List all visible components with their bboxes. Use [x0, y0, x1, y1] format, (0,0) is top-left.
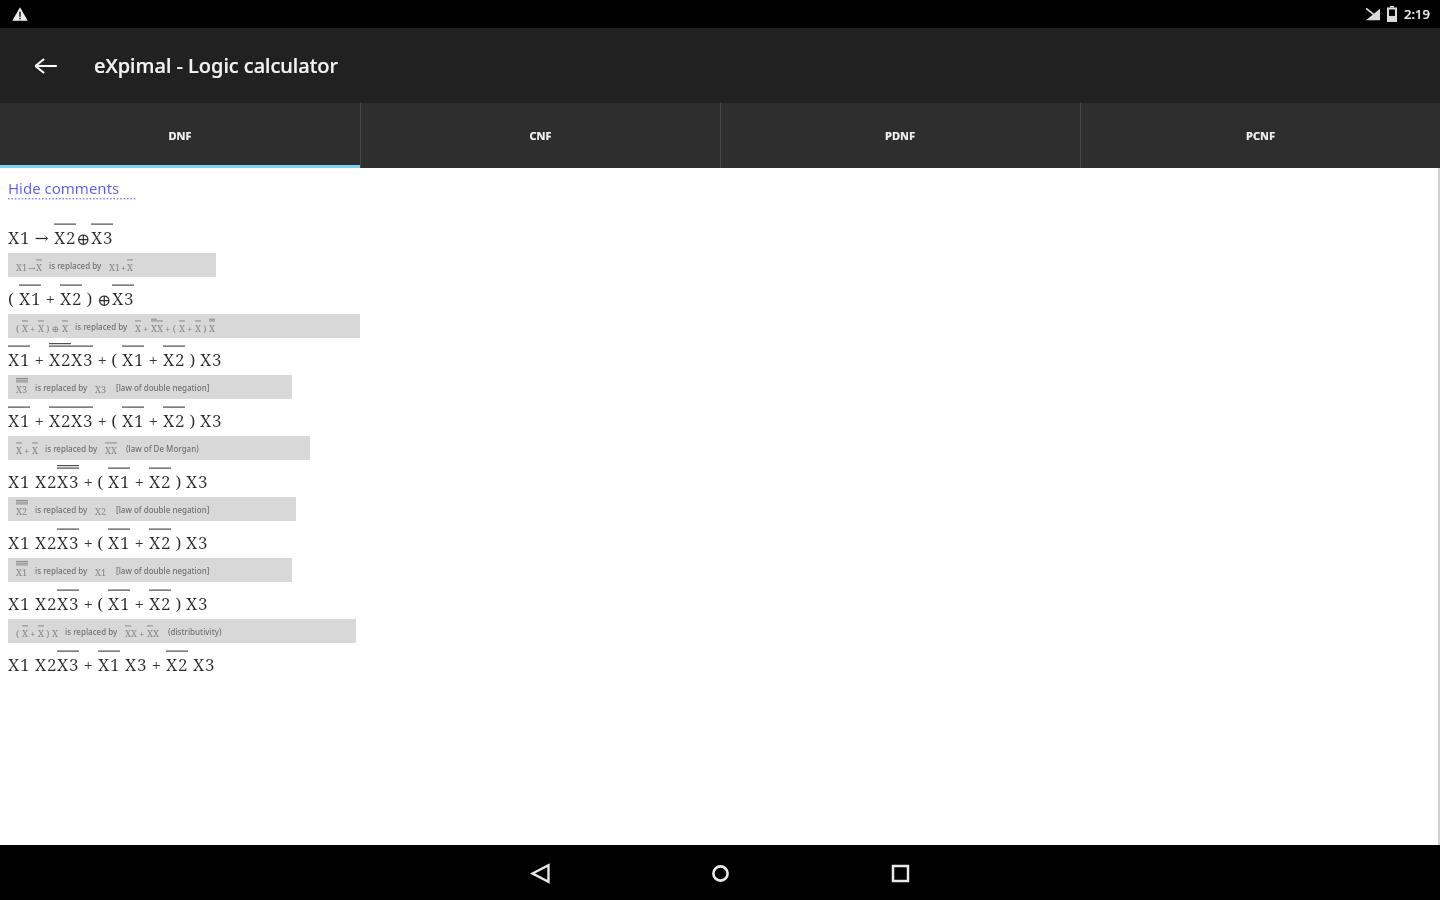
staticText: 3 [198, 592, 208, 615]
staticText: + [147, 653, 166, 676]
button[interactable]: ( [8, 619, 356, 643]
staticText: 3 [137, 653, 147, 676]
staticText: ( [8, 287, 19, 310]
staticText: X [200, 409, 212, 432]
staticText: X [71, 409, 83, 432]
staticText: + [144, 348, 163, 371]
staticText: X [112, 287, 124, 310]
staticText: X [8, 348, 20, 371]
staticText: X [54, 226, 66, 249]
staticText: 1 [134, 348, 144, 371]
staticText: + [22, 444, 32, 456]
staticText: DNF [168, 128, 192, 143]
button[interactable]: CNF [360, 103, 720, 168]
button[interactable]: X [8, 558, 292, 582]
staticText: 1 [20, 470, 30, 493]
staticText: is replaced by [35, 504, 88, 515]
staticText: + [137, 627, 147, 639]
button[interactable]: Home [693, 846, 747, 900]
staticText: X [122, 348, 134, 371]
staticText: 3 [69, 470, 79, 493]
staticText: 1 [20, 226, 30, 249]
staticText: X [186, 470, 198, 493]
staticText: 2 [101, 505, 107, 517]
button[interactable]: X [8, 497, 296, 521]
staticText: + [130, 592, 149, 615]
button[interactable]: ( [8, 314, 360, 338]
staticText: X [147, 627, 153, 639]
button[interactable]: Hide comments [8, 176, 135, 202]
staticText: Hide comments [8, 178, 120, 198]
staticText: X [108, 531, 120, 554]
staticText: + [28, 322, 38, 334]
button[interactable]: X [8, 375, 292, 399]
staticText: X [109, 261, 115, 273]
staticText: X [193, 653, 205, 676]
staticText: X [8, 531, 20, 554]
staticText: ) [185, 409, 200, 432]
button[interactable]: Recent apps [873, 846, 927, 900]
staticText: X [166, 653, 178, 676]
staticText: 1 [22, 566, 28, 578]
staticText: X [38, 322, 44, 334]
button[interactable]: Back [513, 846, 567, 900]
staticText: X [38, 627, 44, 639]
staticText: + [144, 409, 163, 432]
button[interactable]: Back [20, 40, 72, 92]
staticText: 1 [31, 287, 41, 310]
staticText: 3 [103, 226, 113, 249]
button[interactable]: X [8, 436, 310, 460]
staticText: 2 [161, 531, 171, 554]
staticText: 3 [83, 409, 93, 432]
button[interactable]: PCNF [1080, 103, 1440, 168]
staticText: 2 [161, 592, 171, 615]
staticText: 2 [175, 409, 185, 432]
staticText: X [16, 505, 22, 517]
staticText: X [8, 592, 20, 615]
staticText: 3 [101, 383, 107, 395]
staticText: ) [82, 287, 97, 310]
staticText: 2 [178, 653, 188, 676]
staticText: 2 [47, 653, 57, 676]
staticText: ) [201, 322, 209, 334]
staticText: 2 [47, 470, 57, 493]
staticText: 3 [69, 592, 79, 615]
staticText: 2 [161, 470, 171, 493]
staticText: [law of double negation] [116, 382, 210, 393]
staticText: X [16, 383, 22, 395]
button[interactable]: DNF [0, 103, 360, 168]
staticText: 1 [120, 531, 130, 554]
staticText: X [105, 444, 111, 456]
button[interactable]: PDNF [720, 103, 1080, 168]
staticText: → [30, 226, 54, 249]
staticText: 1 [20, 531, 30, 554]
staticText: X [111, 444, 117, 456]
staticText: ) [185, 348, 200, 371]
staticText: X [186, 592, 198, 615]
staticText: + ( [79, 531, 108, 554]
staticText: X [163, 409, 175, 432]
staticText: PDNF [885, 128, 915, 143]
staticText: + ( [93, 348, 122, 371]
staticText: 1 [101, 566, 107, 578]
staticText: X [8, 653, 20, 676]
button[interactable]: X [8, 253, 216, 277]
staticText: X [57, 531, 69, 554]
staticText: [law of double negation] [116, 565, 210, 576]
staticText: + [28, 627, 38, 639]
staticText: X [36, 261, 42, 273]
staticText: ⊕ [97, 290, 112, 310]
staticText: X [95, 383, 101, 395]
staticText: is replaced by [35, 382, 88, 393]
staticText: 2 [22, 505, 28, 517]
staticText: 2:19 [1404, 5, 1430, 23]
staticText: 1 [20, 409, 30, 432]
staticText: eXpimal - Logic calculator [94, 52, 339, 79]
staticText: + [30, 348, 49, 371]
staticText: X [8, 470, 20, 493]
staticText: → [28, 263, 36, 273]
staticText: X [153, 627, 159, 639]
